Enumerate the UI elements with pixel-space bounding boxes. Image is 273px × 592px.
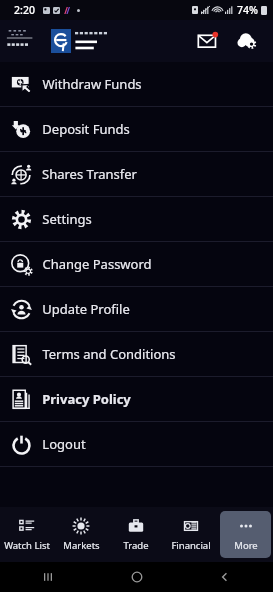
button[interactable]: Messages: [195, 28, 221, 54]
staticText: Trade: [123, 539, 149, 552]
staticText: Shares Transfer: [42, 165, 137, 183]
staticText: Privacy Policy: [42, 390, 131, 408]
button[interactable]: Update Profile: [0, 287, 273, 331]
staticText: Deposit Funds: [42, 120, 130, 138]
button[interactable]: Logout: [0, 422, 273, 466]
button[interactable]: Financial: [165, 511, 216, 558]
staticText: 2:20: [14, 3, 35, 17]
staticText: 74%: [237, 3, 258, 17]
button[interactable]: Markets: [56, 511, 106, 558]
staticText: Financial: [171, 539, 211, 552]
button[interactable]: More: [220, 511, 271, 558]
button[interactable]: Settings: [0, 197, 273, 241]
button[interactable]: Withdraw Funds: [0, 62, 273, 106]
staticText: Withdraw Funds: [42, 75, 142, 93]
button[interactable]: Terms and Conditions: [0, 332, 273, 376]
staticText: Markets: [63, 539, 100, 552]
staticText: More: [234, 539, 258, 552]
staticText: Change Password: [42, 255, 152, 273]
button[interactable]: Change Password: [0, 242, 273, 286]
button[interactable]: Recent apps: [36, 565, 60, 589]
button[interactable]: Settings: [235, 28, 261, 54]
staticText: Terms and Conditions: [42, 345, 176, 363]
button[interactable]: Deposit Funds: [0, 107, 273, 151]
button[interactable]: Shares Transfer: [0, 152, 273, 196]
button[interactable]: Trade: [110, 511, 161, 558]
staticText: Watch List: [4, 539, 50, 552]
staticText: Settings: [42, 210, 92, 228]
staticText: Update Profile: [42, 300, 130, 318]
button[interactable]: Home: [125, 565, 149, 589]
button[interactable]: Watch List: [2, 511, 52, 558]
button[interactable]: Back: [213, 565, 237, 589]
button[interactable]: Privacy Policy: [0, 377, 273, 421]
staticText: Logout: [42, 435, 86, 453]
